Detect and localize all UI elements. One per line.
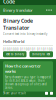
staticText: Hello World	[3, 39, 24, 44]
staticText: Binary Code Translator	[3, 17, 33, 31]
staticText: How the converter works	[5, 63, 41, 74]
staticText: Convert text into binary instantly	[3, 32, 47, 36]
button[interactable]: Binary to Text	[29, 51, 53, 57]
staticText: 01001000 01100101 01101100	[3, 48, 53, 51]
button[interactable]: Text to Binary	[3, 51, 26, 57]
staticText: Share your result	[3, 91, 26, 95]
button[interactable]: Copy	[45, 92, 48, 95]
staticText: Translate to Binary Code	[3, 0, 48, 5]
staticText: Binary to Text	[32, 52, 50, 56]
button[interactable]: More options	[45, 6, 53, 14]
staticText: Every character you type is mapped to it…	[5, 75, 51, 90]
staticText: Text to Binary	[6, 52, 24, 56]
staticText: Binary translator	[3, 7, 33, 13]
button[interactable]: Share	[48, 92, 53, 95]
